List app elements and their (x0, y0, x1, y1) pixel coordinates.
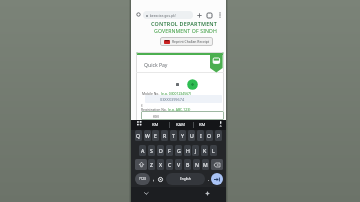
staticText: (e.g. ABC-123) (168, 107, 191, 112)
staticText: Mobile No. (142, 91, 161, 96)
button[interactable]: English (166, 173, 205, 185)
button[interactable]: KM (196, 120, 209, 129)
button[interactable]: C (166, 159, 173, 170)
button[interactable]: A (139, 145, 146, 156)
button[interactable] (144, 192, 149, 195)
button[interactable]: H (184, 145, 191, 156)
button[interactable]: E (152, 130, 159, 141)
staticText: Y (181, 132, 184, 139)
button[interactable]: . (206, 173, 212, 185)
staticText: KM (199, 122, 206, 128)
button[interactable]: J (192, 145, 199, 156)
staticText: W (145, 132, 150, 139)
button[interactable]: 03XXX399674 (145, 95, 222, 103)
staticText: Q (136, 132, 141, 139)
button[interactable] (197, 13, 202, 18)
staticText: KM (153, 114, 159, 119)
button[interactable]: V (175, 159, 182, 170)
staticText: , (153, 176, 155, 182)
button[interactable] (136, 12, 141, 17)
staticText: K (203, 147, 207, 154)
staticText: M (203, 161, 208, 168)
staticText: Registration No. (141, 107, 168, 112)
button[interactable]: W (144, 130, 151, 141)
button[interactable]: U (188, 130, 195, 141)
staticText: N (195, 161, 199, 168)
button[interactable]: KAM (174, 120, 188, 129)
staticText: A (141, 147, 145, 154)
staticText: 8 (141, 104, 143, 108)
button[interactable]: ?123 (135, 173, 150, 185)
button[interactable] (187, 79, 198, 90)
staticText: R (163, 132, 167, 139)
button[interactable]: KM (141, 111, 224, 120)
staticText: F (168, 147, 171, 154)
button[interactable]: P (215, 130, 222, 141)
staticText: X (159, 161, 163, 168)
staticText: beexcise.gos.pk! (148, 13, 176, 18)
button[interactable]: K (201, 145, 208, 156)
staticText: Quick Pay (144, 62, 168, 69)
staticText: KAM (176, 122, 186, 128)
staticText: J (195, 147, 197, 154)
button[interactable]: Reprint Challan Receipt (160, 37, 213, 46)
staticText: Reprint Challan Receipt (172, 39, 210, 44)
button[interactable] (205, 191, 210, 196)
staticText: L (212, 147, 215, 154)
button[interactable]: N (193, 159, 200, 170)
button[interactable]: L (210, 145, 217, 156)
button[interactable]: M (202, 159, 209, 170)
staticText: . (208, 176, 210, 182)
staticText: P (217, 132, 221, 139)
button[interactable]: , (151, 173, 157, 185)
staticText: I (200, 132, 202, 139)
button[interactable]: S (148, 145, 155, 156)
button[interactable]: KM (149, 120, 162, 129)
button[interactable]: B (184, 159, 191, 170)
staticText: GOVERNMENT OF SINDH (154, 27, 217, 34)
button[interactable]: O (206, 130, 213, 141)
staticText: KM (152, 122, 159, 128)
button[interactable]: D (157, 145, 164, 156)
button[interactable]: Y (179, 130, 186, 141)
button[interactable]: T (170, 130, 177, 141)
staticText: O (207, 132, 212, 139)
staticText: CONTROL DEPARTMENT (151, 20, 218, 27)
staticText: English (180, 177, 191, 181)
button[interactable]: I (197, 130, 204, 141)
staticText: (e.g. 03001234567) (161, 91, 192, 96)
button[interactable] (210, 54, 223, 73)
staticText: B (186, 161, 190, 168)
button[interactable] (219, 121, 222, 127)
button[interactable]: G (175, 145, 182, 156)
button[interactable] (207, 13, 212, 18)
button[interactable]: Q (135, 130, 142, 141)
staticText: U (190, 132, 194, 139)
button[interactable]: Z (148, 159, 155, 170)
button[interactable] (211, 159, 223, 170)
staticText: Z (150, 161, 153, 168)
button[interactable] (158, 177, 163, 182)
staticText: E (154, 132, 157, 139)
button[interactable]: R (161, 130, 168, 141)
button[interactable]: X (157, 159, 164, 170)
button[interactable]: F (166, 145, 173, 156)
button[interactable] (219, 12, 221, 18)
button[interactable] (135, 159, 147, 170)
staticText: H (186, 147, 190, 154)
staticText: T (172, 132, 175, 139)
button[interactable] (211, 173, 223, 185)
button[interactable]: beexcise.gos.pk! (143, 11, 193, 19)
staticText: G (177, 147, 181, 154)
staticText: 03XXX399674 (160, 97, 185, 102)
staticText: ?123 (139, 177, 146, 181)
staticText: V (177, 161, 181, 168)
staticText: S (150, 147, 153, 154)
staticText: D (159, 147, 163, 154)
button[interactable] (137, 121, 142, 126)
staticText: C (168, 161, 172, 168)
